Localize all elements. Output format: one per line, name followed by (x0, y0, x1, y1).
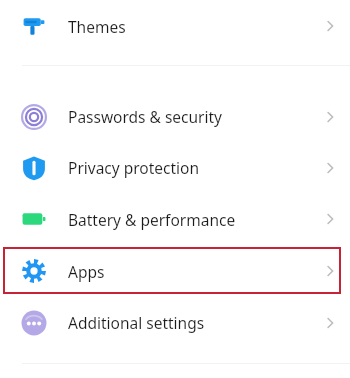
staticText: Battery & performance (68, 209, 236, 230)
staticText: Privacy protection (68, 157, 200, 178)
staticText: Additional settings (68, 312, 205, 333)
button[interactable]: Themes (0, 0, 350, 52)
staticText: Themes (68, 16, 126, 37)
button[interactable]: Privacy protection (0, 142, 350, 193)
button[interactable]: Battery & performance (0, 193, 350, 245)
staticText: Apps (68, 261, 105, 282)
button[interactable]: Apps (0, 245, 350, 297)
button[interactable]: Additional settings (0, 297, 350, 348)
button[interactable]: Passwords & security (0, 91, 350, 142)
staticText: Passwords & security (68, 106, 223, 127)
